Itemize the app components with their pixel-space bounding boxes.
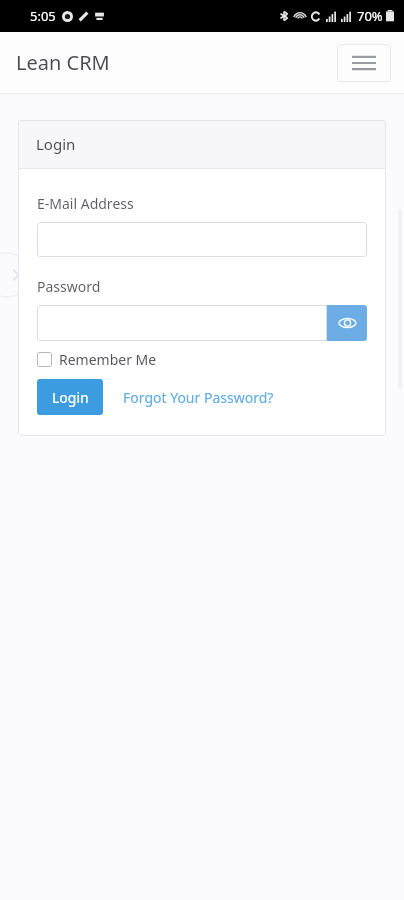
button[interactable]: Forgot Your Password? bbox=[121, 382, 276, 413]
staticText: Lean CRM bbox=[16, 49, 110, 76]
staticText: 5:05 bbox=[30, 7, 56, 25]
staticText: Forgot Your Password? bbox=[123, 388, 274, 407]
button[interactable]: Remember Me bbox=[37, 348, 157, 371]
button[interactable]: Login bbox=[37, 379, 103, 415]
staticText: Login bbox=[52, 388, 89, 407]
button[interactable]: Open navigation menu bbox=[337, 44, 391, 82]
staticText: Password bbox=[37, 277, 101, 296]
staticText: E-Mail Address bbox=[37, 194, 134, 213]
button[interactable] bbox=[37, 305, 327, 341]
staticText: Login bbox=[36, 134, 76, 154]
staticText: Remember Me bbox=[59, 350, 157, 369]
button[interactable]: Show password bbox=[327, 305, 367, 341]
button[interactable] bbox=[37, 222, 367, 257]
staticText: 70% bbox=[357, 7, 383, 25]
